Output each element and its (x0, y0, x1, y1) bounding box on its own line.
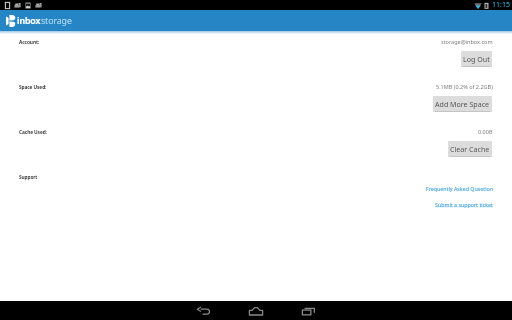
staticText: 11:15 (492, 0, 510, 10)
staticText: Frequently Asked Question (425, 185, 493, 192)
button[interactable]: Submit a support ticket (435, 201, 493, 208)
staticText: Add More Space (435, 99, 490, 109)
staticText: Cache Used: (19, 129, 47, 136)
staticText: 0.00B (478, 128, 493, 135)
staticText: inbox (17, 15, 41, 27)
staticText: Space Used: (19, 84, 47, 91)
staticText: Submit a support ticket (435, 201, 493, 208)
staticText: Log Out (463, 54, 490, 64)
button[interactable]: Add More Space (433, 96, 492, 112)
staticText: storage@inbox.com (441, 38, 493, 45)
button[interactable]: Back (196, 302, 211, 319)
staticText: Clear Cache (450, 144, 490, 154)
button[interactable]: Recent apps (301, 302, 316, 319)
button[interactable]: Clear Cache (448, 141, 492, 157)
staticText: Support (19, 174, 38, 181)
button[interactable]: Frequently Asked Question (425, 185, 493, 192)
staticText: storage (41, 15, 72, 27)
staticText: Account: (19, 39, 40, 46)
button[interactable]: Log Out (461, 51, 492, 67)
button[interactable]: Home (248, 302, 264, 319)
staticText: 5.1MB (0.2% of 2.2GB) (436, 83, 493, 90)
